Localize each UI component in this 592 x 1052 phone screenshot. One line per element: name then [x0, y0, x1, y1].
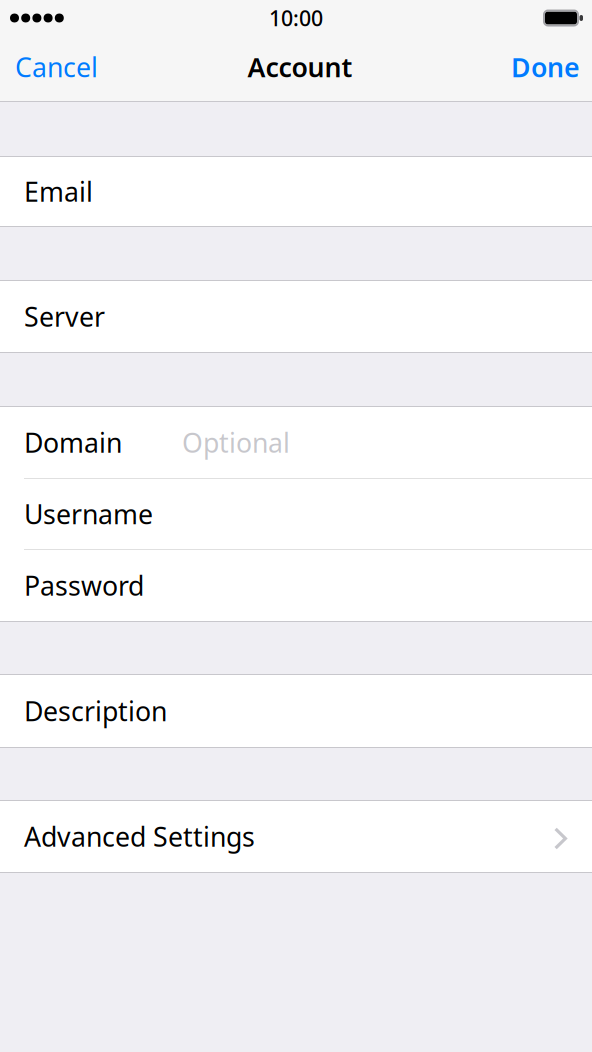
staticText: Advanced Settings [24, 819, 255, 854]
staticText: Cancel [15, 49, 98, 85]
button[interactable]: Done [499, 38, 592, 96]
button[interactable]: Cancel [0, 38, 110, 96]
staticText: 10:00 [269, 4, 323, 32]
button[interactable]: Password [0, 550, 592, 621]
button[interactable]: Domain [0, 407, 592, 478]
staticText: Server [24, 299, 105, 334]
staticText: Domain [24, 425, 122, 460]
staticText: Done [511, 49, 580, 85]
button[interactable]: Description [0, 675, 592, 747]
button[interactable]: Email [0, 157, 592, 226]
staticText: Optional [182, 425, 290, 460]
button[interactable]: Server [0, 281, 592, 352]
staticText: Email [24, 174, 93, 209]
button[interactable]: Username [0, 479, 592, 549]
staticText: Username [24, 496, 153, 532]
button[interactable]: Advanced Settings [0, 801, 592, 872]
staticText: Account [247, 49, 352, 85]
staticText: Description [24, 693, 167, 729]
staticText: Password [24, 568, 144, 603]
